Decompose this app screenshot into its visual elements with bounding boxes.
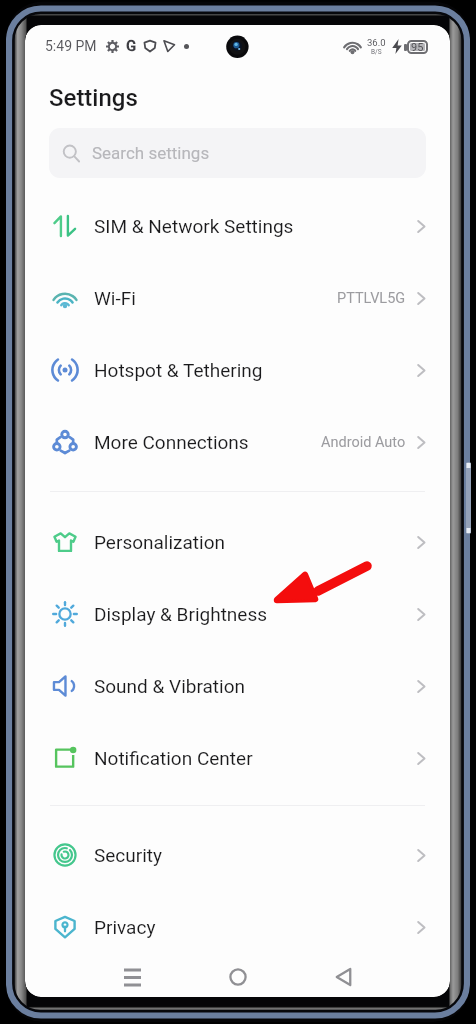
staticText: Notification Center (94, 747, 253, 769)
button[interactable]: Back (322, 956, 364, 997)
button[interactable]: Wi-Fi (25, 262, 450, 334)
button[interactable]: More Connections (25, 406, 450, 478)
button[interactable]: Security (25, 819, 450, 891)
staticText: PTTLVL5G (337, 290, 406, 307)
staticText: Settings (49, 84, 138, 112)
button[interactable]: Recent apps (111, 956, 153, 997)
button[interactable]: Notification Center (25, 722, 450, 794)
button[interactable]: Home (217, 956, 259, 997)
button[interactable]: Search settings (49, 128, 426, 178)
staticText: Privacy (94, 916, 156, 938)
staticText: Search settings (92, 143, 210, 163)
staticText: Hotspot & Tethering (94, 359, 263, 381)
staticText: Display & Brightness (94, 603, 268, 625)
button[interactable]: Personalization (25, 506, 450, 578)
staticText: Security (94, 844, 163, 866)
button[interactable]: Sound & Vibration (25, 650, 450, 722)
staticText: Sound & Vibration (94, 675, 245, 697)
staticText: SIM & Network Settings (94, 215, 294, 237)
button[interactable]: Display & Brightness (25, 578, 450, 650)
button[interactable]: Privacy (25, 891, 450, 963)
button[interactable]: SIM & Network Settings (25, 190, 450, 262)
staticText: 95 (411, 41, 424, 54)
staticText: Personalization (94, 531, 226, 553)
staticText: Wi-Fi (94, 287, 136, 309)
staticText: More Connections (94, 431, 249, 453)
staticText: 36.0 (367, 37, 386, 48)
button[interactable]: Hotspot & Tethering (25, 334, 450, 406)
staticText: G (126, 37, 137, 55)
staticText: B/S (371, 48, 382, 56)
staticText: Android Auto (321, 434, 406, 451)
staticText: 5:49 PM (45, 38, 97, 54)
